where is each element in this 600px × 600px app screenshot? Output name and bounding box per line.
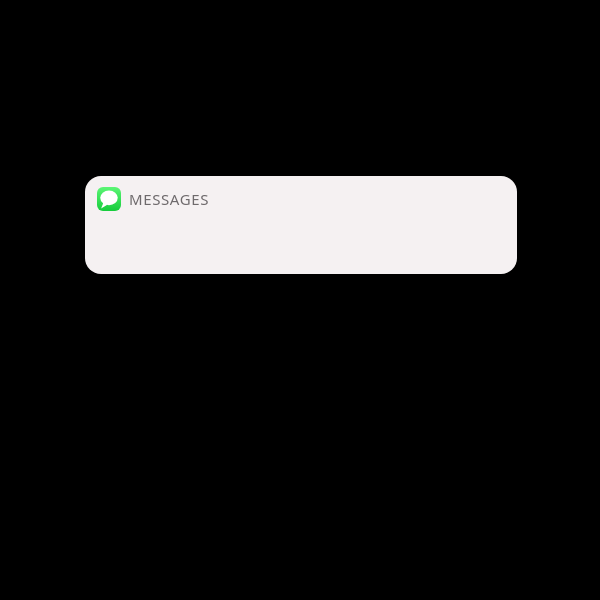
other: Messages app icon [97, 187, 121, 211]
staticText: MESSAGES [129, 189, 209, 209]
button[interactable]: Messages app icon [85, 176, 517, 274]
